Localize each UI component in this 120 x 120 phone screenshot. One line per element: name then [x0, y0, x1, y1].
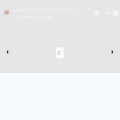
- button[interactable]: Next: [109, 46, 116, 59]
- button[interactable]: Previous: [3, 46, 11, 59]
- button[interactable]: Open result: [56, 47, 64, 58]
